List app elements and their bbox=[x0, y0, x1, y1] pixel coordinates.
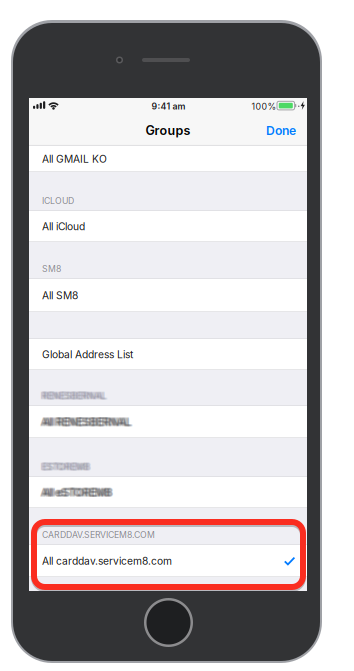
staticText: ESTOREM8 bbox=[44, 461, 91, 472]
staticText: ESTOREM8 bbox=[41, 462, 88, 473]
staticText: RENESBERNAL bbox=[43, 390, 107, 401]
staticText: All RENESBERNAL bbox=[40, 416, 129, 428]
staticText: All eSTOREM8 bbox=[42, 486, 111, 499]
staticText: ESTOREM8 bbox=[43, 462, 90, 473]
staticText: All RENESBERNAL bbox=[41, 415, 130, 427]
staticText: All iCloud bbox=[42, 220, 85, 233]
staticText: All eSTOREM8 bbox=[44, 487, 113, 499]
button[interactable]: All carddav.servicem8.com bbox=[29, 545, 307, 577]
staticText: All eSTOREM8 bbox=[41, 485, 110, 498]
staticText: RENESBERNAL bbox=[40, 390, 104, 400]
staticText: RENESBERNAL bbox=[42, 391, 106, 402]
staticText: All eSTOREM8 bbox=[44, 485, 113, 498]
staticText: All eSTOREM8 bbox=[41, 487, 110, 499]
staticText: RENESBERNAL bbox=[43, 390, 107, 400]
staticText: RENESBERNAL bbox=[44, 391, 108, 402]
staticText: RENESBERNAL bbox=[42, 390, 106, 400]
staticText: All eSTOREM8 bbox=[43, 487, 112, 499]
staticText: RENESBERNAL bbox=[40, 391, 104, 402]
staticText: All eSTOREM8 bbox=[42, 485, 111, 498]
staticText: ESTOREM8 bbox=[41, 461, 88, 471]
button[interactable]: All eSTOREM8 bbox=[29, 477, 307, 508]
staticText: All eSTOREM8 bbox=[43, 485, 112, 498]
staticText: All RENESBERNAL bbox=[41, 416, 130, 429]
staticText: All eSTOREM8 bbox=[40, 486, 109, 499]
staticText: CARDDAV.SERVICEM8.COM bbox=[42, 529, 155, 540]
staticText: RENESBERNAL bbox=[42, 391, 106, 402]
staticText: 9:41 am bbox=[151, 101, 185, 112]
staticText: All RENESBERNAL bbox=[42, 416, 131, 429]
staticText: RENESBERNAL bbox=[44, 390, 108, 400]
staticText: All eSTOREM8 bbox=[41, 485, 110, 498]
staticText: ESTOREM8 bbox=[44, 462, 91, 473]
staticText: All eSTOREM8 bbox=[44, 486, 113, 499]
staticText: RENESBERNAL bbox=[42, 390, 106, 400]
staticText: All SM8 bbox=[42, 289, 78, 302]
button[interactable]: All GMAIL KO bbox=[29, 146, 307, 172]
staticText: All eSTOREM8 bbox=[40, 487, 109, 499]
staticText: ESTOREM8 bbox=[44, 461, 91, 472]
staticText: RENESBERNAL bbox=[40, 390, 104, 401]
staticText: All RENESBERNAL bbox=[44, 416, 133, 428]
staticText: RENESBERNAL bbox=[40, 390, 104, 400]
staticText: RENESBERNAL bbox=[40, 390, 104, 401]
staticText: All RENESBERNAL bbox=[42, 416, 131, 429]
staticText: All carddav.servicem8.com bbox=[42, 555, 172, 567]
staticText: RENESBERNAL bbox=[43, 390, 107, 401]
staticText: RENESBERNAL bbox=[43, 391, 107, 402]
staticText: All RENESBERNAL bbox=[41, 415, 130, 427]
staticText: ESTOREM8 bbox=[40, 462, 87, 473]
staticText: All eSTOREM8 bbox=[43, 485, 112, 498]
staticText: All RENESBERNAL bbox=[43, 416, 132, 428]
staticText: Groups bbox=[145, 123, 190, 138]
staticText: All RENESBERNAL bbox=[44, 416, 133, 429]
staticText: ESTOREM8 bbox=[40, 461, 87, 471]
staticText: All RENESBERNAL bbox=[42, 415, 131, 427]
staticText: RENESBERNAL bbox=[41, 390, 105, 400]
staticText: Done bbox=[266, 123, 296, 138]
staticText: ESTOREM8 bbox=[42, 462, 89, 473]
staticText: RENESBERNAL bbox=[40, 391, 104, 402]
staticText: All RENESBERNAL bbox=[41, 416, 130, 429]
staticText: ESTOREM8 bbox=[42, 462, 89, 473]
staticText: ESTOREM8 bbox=[43, 461, 90, 471]
staticText: RENESBERNAL bbox=[42, 390, 106, 401]
button[interactable]: All iCloud bbox=[29, 211, 307, 242]
staticText: All eSTOREM8 bbox=[40, 485, 109, 498]
staticText: ESTOREM8 bbox=[40, 461, 87, 472]
staticText: All RENESBERNAL bbox=[43, 416, 132, 429]
staticText: ESTOREM8 bbox=[42, 461, 89, 472]
staticText: All RENESBERNAL bbox=[43, 416, 132, 429]
staticText: ESTOREM8 bbox=[42, 461, 89, 471]
staticText: ESTOREM8 bbox=[43, 462, 90, 473]
staticText: All eSTOREM8 bbox=[40, 486, 109, 499]
staticText: All RENESBERNAL bbox=[40, 415, 129, 427]
staticText: RENESBERNAL bbox=[42, 390, 106, 401]
staticText: All RENESBERNAL bbox=[40, 415, 129, 427]
staticText: All eSTOREM8 bbox=[44, 485, 113, 498]
staticText: ESTOREM8 bbox=[41, 462, 88, 473]
staticText: All RENESBERNAL bbox=[43, 415, 132, 427]
staticText: ESTOREM8 bbox=[42, 462, 89, 473]
staticText: ESTOREM8 bbox=[41, 461, 88, 472]
staticText: All eSTOREM8 bbox=[41, 486, 110, 499]
staticText: RENESBERNAL bbox=[44, 391, 108, 402]
staticText: All RENESBERNAL bbox=[40, 416, 129, 428]
staticText: All RENESBERNAL bbox=[44, 416, 133, 428]
staticText: All eSTOREM8 bbox=[41, 485, 110, 498]
staticText: All eSTOREM8 bbox=[43, 486, 112, 499]
button[interactable]: All SM8 bbox=[29, 279, 307, 312]
staticText: All eSTOREM8 bbox=[42, 487, 111, 499]
button[interactable]: Global Address List bbox=[29, 339, 307, 370]
staticText: All RENESBERNAL bbox=[44, 416, 133, 429]
button[interactable]: Done bbox=[260, 116, 302, 145]
staticText: ESTOREM8 bbox=[44, 461, 91, 471]
staticText: All eSTOREM8 bbox=[41, 486, 110, 499]
staticText: All RENESBERNAL bbox=[41, 415, 130, 427]
staticText: ESTOREM8 bbox=[43, 461, 90, 472]
staticText: ESTOREM8 bbox=[42, 461, 89, 471]
staticText: ESTOREM8 bbox=[41, 461, 88, 471]
button[interactable]: All RENESBERNAL bbox=[29, 406, 307, 438]
staticText: All RENESBERNAL bbox=[43, 415, 132, 427]
staticText: All GMAIL KO bbox=[42, 153, 107, 165]
